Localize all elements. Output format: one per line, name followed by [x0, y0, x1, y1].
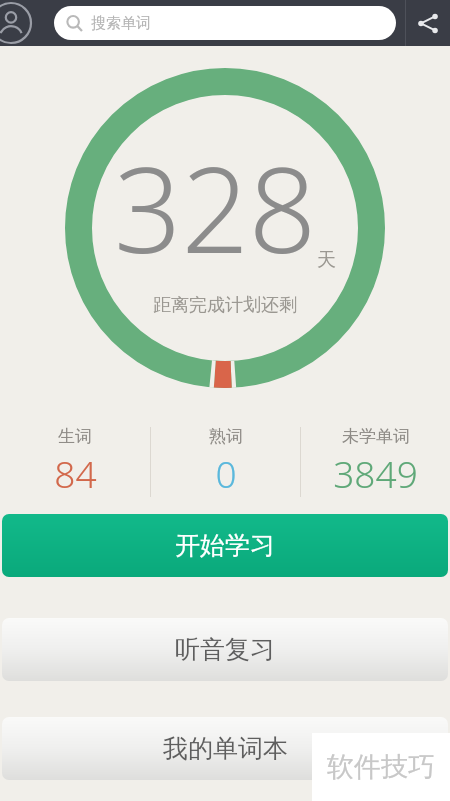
button[interactable]: 搜索单词: [54, 6, 396, 40]
button[interactable]: Share: [406, 0, 450, 46]
staticText: 距离完成计划还剩: [153, 294, 297, 317]
staticText: 3849: [333, 448, 418, 498]
staticText: 听音复习: [175, 634, 275, 665]
button[interactable]: 未学单词: [301, 426, 450, 498]
staticText: 软件技巧: [327, 750, 435, 784]
button[interactable]: 开始学习: [2, 514, 448, 577]
staticText: 搜索单词: [91, 14, 151, 33]
button[interactable]: 我的单词本: [2, 717, 448, 780]
button[interactable]: 听音复习: [2, 618, 448, 681]
button[interactable]: Profile: [0, 0, 34, 46]
button[interactable]: 熟词: [151, 426, 300, 498]
staticText: 84: [54, 448, 97, 498]
staticText: 熟词: [209, 426, 243, 447]
staticText: 天: [317, 248, 336, 272]
staticText: 开始学习: [175, 530, 275, 561]
staticText: 我的单词本: [163, 733, 288, 764]
staticText: 生词: [58, 426, 92, 447]
staticText: 未学单词: [342, 426, 410, 447]
staticText: 328: [114, 127, 317, 288]
button[interactable]: 生词: [0, 426, 150, 498]
staticText: 0: [215, 448, 237, 498]
